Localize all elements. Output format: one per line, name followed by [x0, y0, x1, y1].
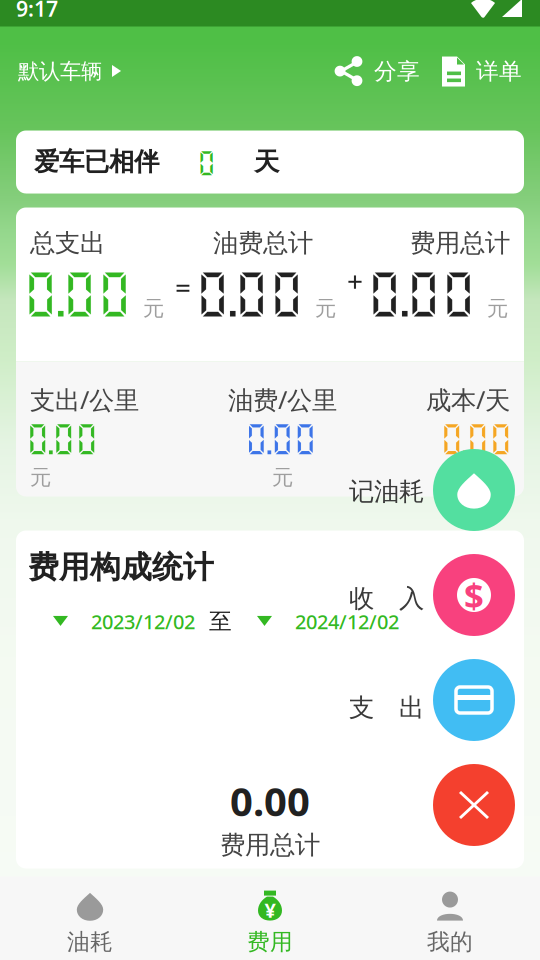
button[interactable]: 收入 — [433, 554, 515, 636]
staticText: 详单 — [476, 58, 522, 85]
staticText: 元 — [143, 295, 164, 321]
staticText: 元 — [315, 295, 336, 321]
button[interactable]: 我的 — [360, 880, 540, 960]
staticText: 油费总计 — [213, 228, 313, 259]
staticText: 0.00 — [440, 420, 512, 457]
staticText: 0 — [159, 147, 254, 178]
staticText: 至 — [209, 607, 232, 635]
button[interactable]: 2024/12/02 — [257, 602, 399, 641]
staticText: 总支出 — [30, 228, 105, 259]
staticText: 元 — [487, 295, 508, 321]
staticText: 记油耗 — [349, 476, 424, 507]
button[interactable]: 默认车辆 — [0, 26, 140, 116]
button[interactable]: 记油耗 — [433, 449, 515, 531]
staticText: 油费/公里 — [228, 383, 337, 416]
staticText: 支 出 — [349, 692, 424, 723]
staticText: 0.00 — [23, 265, 132, 321]
staticText: 费用构成统计 — [28, 548, 214, 586]
staticText: 油耗 — [67, 928, 113, 956]
staticText — [504, 463, 510, 492]
button[interactable]: 关闭 — [433, 764, 515, 846]
staticText: 分享 — [374, 58, 420, 85]
staticText: 2024/12/02 — [295, 608, 399, 635]
staticText: ¥ — [264, 897, 275, 923]
staticText: 成本/天 — [426, 383, 510, 416]
staticText: 收 入 — [349, 583, 424, 614]
staticText: + — [347, 262, 363, 299]
staticText: 我的 — [427, 928, 473, 956]
staticText: 0.00 — [230, 774, 310, 827]
button[interactable]: ¥ — [180, 880, 360, 960]
staticText: 0.00 — [26, 420, 98, 457]
staticText: 0.00 — [367, 265, 476, 321]
staticText: 9:17 — [16, 0, 58, 23]
staticText: 2023/12/02 — [91, 608, 195, 635]
staticText: 支出/公里 — [30, 383, 139, 416]
button[interactable]: 油耗 — [0, 880, 180, 960]
staticText: $ — [464, 572, 484, 618]
staticText: 0.00 — [244, 420, 316, 457]
staticText: 费用 — [247, 928, 293, 956]
staticText: 元 — [272, 464, 293, 491]
staticText: 天 — [254, 146, 279, 177]
button[interactable]: 2023/12/02 — [53, 602, 195, 641]
staticText: 费用总计 — [410, 228, 510, 259]
button[interactable]: 支出 — [433, 659, 515, 741]
staticText: 费用总计 — [220, 829, 320, 860]
staticText: 爱车已相伴 — [34, 146, 159, 177]
staticText: 0.00 — [195, 265, 304, 321]
staticText: = — [175, 268, 191, 305]
staticText: 默认车辆 — [18, 58, 102, 85]
button[interactable]: 详单 — [428, 26, 540, 116]
button[interactable]: 分享 — [324, 26, 428, 116]
staticText: 元 — [30, 464, 51, 491]
